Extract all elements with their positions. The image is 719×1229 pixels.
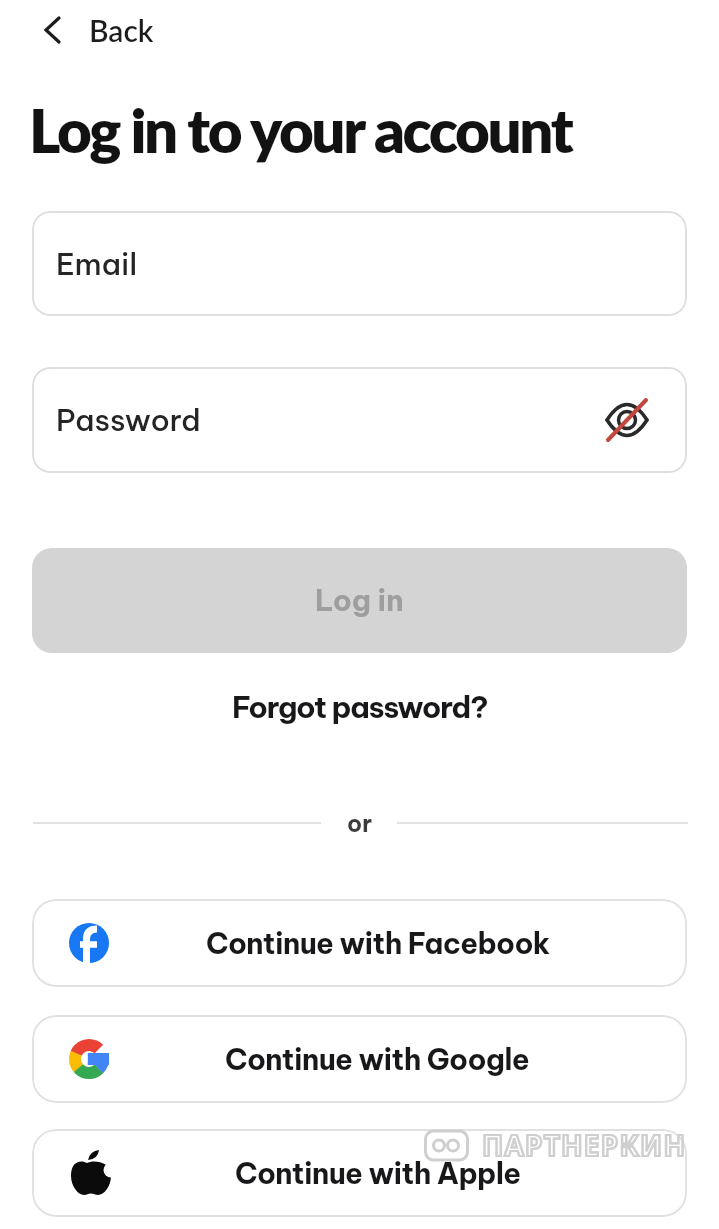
staticText: Continue with Facebook (206, 925, 550, 962)
staticText: Email (56, 245, 138, 283)
button[interactable]: Email (32, 211, 687, 316)
button[interactable]: Password (32, 367, 687, 473)
button[interactable]: Back (38, 6, 160, 54)
staticText: Log in (315, 582, 404, 619)
button[interactable]: Continue with Apple (32, 1129, 687, 1217)
staticText: ПАРТНЕРКИН (482, 1126, 687, 1164)
button[interactable]: Forgot password? (222, 684, 498, 730)
staticText: Password (56, 401, 201, 439)
staticText: Forgot password? (232, 688, 488, 726)
staticText: Continue with Apple (235, 1155, 521, 1192)
button[interactable]: Continue with Google (32, 1015, 687, 1103)
button[interactable]: Continue with Facebook (32, 899, 687, 987)
staticText: or (347, 809, 373, 838)
staticText: Log in to your account (29, 94, 572, 166)
staticText: Back (89, 12, 154, 48)
button[interactable]: Log in (32, 548, 687, 653)
staticText: Continue with Google (225, 1041, 530, 1078)
